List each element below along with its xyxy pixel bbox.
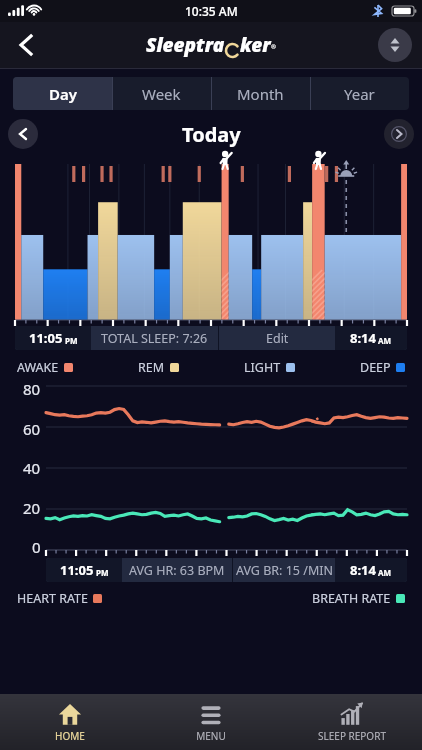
staticText: REM <box>138 359 165 376</box>
staticText: 60 <box>23 419 41 439</box>
button[interactable]: Edit <box>219 326 335 350</box>
staticText: 40 <box>23 458 41 478</box>
staticText: PM <box>96 567 109 578</box>
button[interactable]: HOME <box>0 694 140 750</box>
staticText: TOTAL SLEEP: 7:26 <box>101 330 208 347</box>
button[interactable]: Previous day <box>8 119 38 149</box>
staticText: AVG BR: 15 /MIN <box>236 562 333 579</box>
staticText: DEEP <box>360 359 391 376</box>
button[interactable]: Sort <box>378 28 412 62</box>
staticText: Week <box>142 84 181 104</box>
staticText: MENU <box>196 729 226 743</box>
staticText: 10:35 AM <box>185 3 238 19</box>
button[interactable]: SLEEP REPORT <box>281 694 422 750</box>
staticText: Month <box>237 84 284 104</box>
staticText: 11:05 <box>60 561 94 579</box>
staticText: Year <box>344 84 375 104</box>
staticText: SLEEP REPORT <box>318 729 386 743</box>
staticText: AWAKE <box>17 359 59 376</box>
staticText: Day <box>49 84 77 104</box>
staticText: ker <box>240 32 271 58</box>
button[interactable]: AVG BR: 15 /MIN <box>233 558 335 582</box>
staticText: AM <box>378 335 392 346</box>
staticText: HEART RATE <box>17 590 88 607</box>
staticText: PM <box>65 335 78 346</box>
staticText: 11:05 <box>29 329 63 347</box>
staticText: ® <box>271 43 276 51</box>
button[interactable]: Back <box>4 23 48 67</box>
staticText: 0 <box>32 537 41 557</box>
staticText: BREATH RATE <box>312 590 391 607</box>
staticText: AVG HR: 63 BPM <box>129 562 225 579</box>
staticText: 20 <box>23 498 41 518</box>
staticText: LIGHT <box>244 359 281 376</box>
button[interactable]: Month <box>211 77 310 110</box>
staticText: 8:14 <box>350 561 376 579</box>
staticText: 80 <box>23 379 41 399</box>
staticText: HOME <box>55 729 85 743</box>
button[interactable]: MENU <box>140 694 281 750</box>
staticText: AM <box>378 567 392 578</box>
staticText: Today <box>182 121 241 148</box>
button[interactable]: Next day <box>384 119 414 149</box>
staticText: Edit <box>266 330 289 347</box>
staticText: Sleeptra <box>146 32 225 58</box>
button[interactable]: Day <box>13 77 112 110</box>
staticText: 8:14 <box>350 329 376 347</box>
button[interactable]: Year <box>310 77 409 110</box>
button[interactable]: Week <box>112 77 211 110</box>
